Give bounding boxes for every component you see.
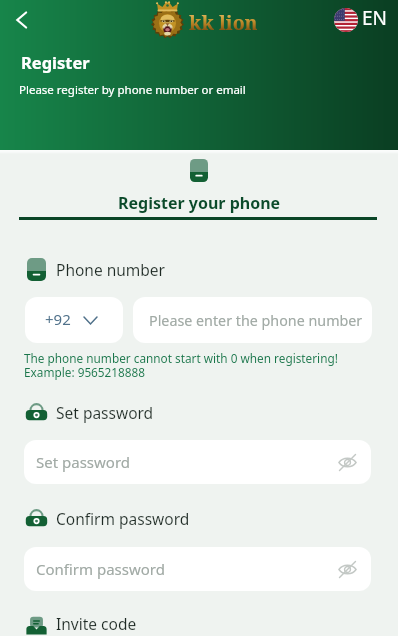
staticText: The phone number cannot start with 0 whe…	[24, 350, 338, 366]
staticText: Please register by phone number or email	[19, 82, 246, 98]
button[interactable]: Show password	[338, 560, 357, 579]
button[interactable]: +92	[25, 297, 123, 343]
button[interactable]: Please enter the phone number	[133, 297, 372, 343]
button[interactable]: Confirm password	[24, 547, 371, 591]
staticText: Please enter the phone number	[149, 311, 363, 330]
staticText: kk lion	[189, 9, 258, 36]
staticText: Confirm password	[56, 508, 190, 529]
staticText: Example: 9565218888	[24, 364, 146, 380]
staticText: Invite code	[56, 613, 137, 634]
staticText: Register	[21, 51, 90, 73]
staticText: EN	[362, 5, 388, 31]
staticText: Phone number	[56, 259, 166, 280]
staticText: Set password	[56, 402, 154, 423]
staticText: +92	[45, 309, 71, 329]
staticText: Confirm password	[36, 559, 165, 579]
button[interactable]: Show password	[338, 453, 357, 472]
button[interactable]: Back	[7, 6, 35, 34]
button[interactable]: Set password	[24, 440, 371, 484]
staticText: Set password	[36, 452, 131, 472]
staticText: Register your phone	[118, 192, 281, 214]
button[interactable]: EN	[334, 7, 388, 33]
